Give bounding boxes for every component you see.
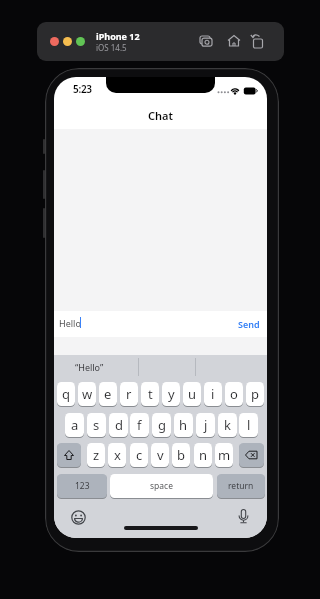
- button[interactable]: [194, 29, 218, 53]
- button[interactable]: [63, 37, 72, 46]
- staticText: x: [114, 446, 121, 464]
- button[interactable]: d: [109, 413, 128, 437]
- button[interactable]: [239, 443, 264, 467]
- button[interactable]: p: [246, 382, 264, 406]
- staticText: i: [211, 385, 215, 403]
- button[interactable]: e: [99, 382, 117, 406]
- button[interactable]: b: [172, 443, 190, 467]
- button[interactable]: t: [141, 382, 159, 406]
- button[interactable]: c: [130, 443, 148, 467]
- staticText: g: [158, 416, 166, 434]
- staticText: Chat: [148, 108, 173, 123]
- button[interactable]: g: [152, 413, 171, 437]
- button[interactable]: space: [110, 474, 213, 498]
- button[interactable]: i: [204, 382, 222, 406]
- staticText: p: [251, 385, 259, 403]
- staticText: n: [199, 446, 208, 464]
- staticText: 5:23: [73, 82, 92, 96]
- staticText: b: [177, 446, 185, 464]
- staticText: d: [115, 416, 123, 434]
- button[interactable]: j: [196, 413, 215, 437]
- button[interactable]: [57, 443, 81, 467]
- staticText: “Hello”: [75, 361, 104, 373]
- staticText: Hello: [59, 317, 81, 329]
- button[interactable]: x: [108, 443, 126, 467]
- button[interactable]: k: [218, 413, 237, 437]
- staticText: o: [230, 385, 238, 403]
- button[interactable]: m: [215, 443, 233, 467]
- button[interactable]: r: [120, 382, 138, 406]
- button[interactable]: Hello: [54, 311, 267, 337]
- button[interactable]: [50, 37, 59, 46]
- staticText: u: [188, 385, 197, 403]
- staticText: f: [137, 416, 142, 434]
- button[interactable]: [246, 30, 270, 54]
- staticText: y: [168, 385, 175, 403]
- button[interactable]: l: [239, 413, 258, 437]
- staticText: l: [247, 416, 251, 434]
- button[interactable]: [233, 506, 254, 527]
- staticText: q: [62, 385, 70, 403]
- button[interactable]: a: [65, 413, 84, 437]
- staticText: r: [126, 385, 132, 403]
- button[interactable]: f: [130, 413, 149, 437]
- staticText: t: [148, 385, 153, 403]
- button[interactable]: h: [174, 413, 193, 437]
- staticText: return: [228, 480, 254, 492]
- staticText: Send: [238, 318, 260, 330]
- button[interactable]: v: [151, 443, 169, 467]
- button[interactable]: n: [194, 443, 212, 467]
- button[interactable]: z: [87, 443, 105, 467]
- button[interactable]: w: [78, 382, 96, 406]
- staticText: j: [204, 416, 208, 434]
- button[interactable]: [68, 507, 89, 528]
- staticText: 123: [75, 480, 90, 492]
- staticText: v: [157, 446, 164, 464]
- staticText: m: [218, 446, 231, 464]
- button[interactable]: [76, 37, 85, 46]
- button[interactable]: q: [57, 382, 75, 406]
- button[interactable]: “Hello”: [54, 353, 125, 380]
- staticText: a: [71, 416, 79, 434]
- staticText: space: [150, 480, 173, 492]
- button[interactable]: s: [87, 413, 106, 437]
- staticText: e: [104, 385, 112, 403]
- staticText: h: [179, 416, 188, 434]
- staticText: iOS 14.5: [96, 42, 127, 53]
- button[interactable]: Send: [238, 318, 260, 330]
- staticText: w: [82, 385, 93, 403]
- staticText: iPhone 12: [96, 30, 140, 42]
- button[interactable]: y: [162, 382, 180, 406]
- staticText: k: [224, 416, 231, 434]
- button[interactable]: [222, 29, 246, 53]
- button[interactable]: u: [183, 382, 201, 406]
- button[interactable]: 123: [57, 474, 107, 498]
- button[interactable]: o: [225, 382, 243, 406]
- staticText: c: [136, 446, 143, 464]
- staticText: s: [93, 416, 100, 434]
- button[interactable]: return: [217, 474, 265, 498]
- staticText: z: [93, 446, 100, 464]
